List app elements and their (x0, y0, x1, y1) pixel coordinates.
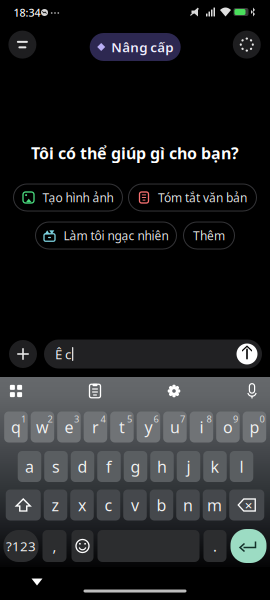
staticText: i (199, 416, 203, 438)
staticText: 18:34 (13, 5, 40, 20)
button[interactable]: w (31, 411, 54, 442)
button[interactable]: p (243, 411, 266, 442)
button[interactable]: h (150, 451, 174, 482)
staticText: o (223, 416, 233, 438)
button[interactable]: Ê c (44, 339, 262, 368)
staticText: w (36, 416, 49, 438)
button[interactable]: Shift (6, 489, 41, 520)
staticText: Làm tôi ngạc nhiên (63, 227, 168, 243)
staticText: s (52, 456, 60, 477)
button[interactable]: New chat (233, 31, 261, 59)
button[interactable]: v (123, 489, 147, 520)
button[interactable]: Hide keyboard (21, 570, 53, 594)
staticText: Tôi có thể giúp gì cho bạn? (31, 142, 239, 164)
staticText: u (170, 416, 180, 438)
button[interactable]: Delete (229, 489, 264, 520)
staticText: Thêm (193, 227, 225, 243)
button[interactable]: Voice input (239, 378, 265, 404)
staticText: 6 (153, 413, 158, 425)
button[interactable]: Add attachment (9, 340, 37, 368)
staticText: e (64, 416, 73, 438)
button[interactable]: g (124, 451, 147, 482)
staticText: f (106, 456, 112, 477)
staticText: m (207, 494, 222, 516)
staticText: Nâng cấp (111, 38, 173, 56)
staticText: a (25, 456, 34, 477)
button[interactable]: n (176, 489, 200, 520)
button[interactable]: Tạo hình ảnh (13, 184, 122, 211)
button[interactable]: Apps (3, 378, 29, 404)
staticText: y (144, 416, 152, 438)
staticText: x (78, 494, 86, 516)
staticText: 0 (259, 413, 264, 425)
button[interactable]: o (216, 411, 240, 442)
staticText: j (186, 456, 190, 477)
staticText: l (239, 456, 243, 477)
staticText: c (104, 494, 112, 516)
staticText: 8 (206, 413, 211, 425)
staticText: g (130, 456, 140, 477)
staticText: , (52, 536, 56, 556)
staticText: d (77, 456, 87, 477)
button[interactable]: Settings (161, 378, 187, 404)
button[interactable]: Thêm (183, 222, 234, 249)
staticText: r (92, 416, 99, 438)
button[interactable]: s (44, 451, 68, 482)
staticText: h (157, 456, 167, 477)
button[interactable]: q (4, 411, 28, 442)
button[interactable]: Enter (230, 529, 266, 563)
staticText: n (183, 494, 193, 516)
button[interactable]: Làm tôi ngạc nhiên (35, 222, 176, 249)
button[interactable]: r (84, 411, 107, 442)
staticText: 5 (127, 413, 132, 425)
button[interactable]: j (177, 451, 200, 482)
button[interactable]: l (230, 451, 253, 482)
button[interactable]: e (57, 411, 81, 442)
staticText: v (131, 494, 139, 516)
staticText: p (249, 416, 259, 438)
button[interactable]: Tóm tắt văn bản (128, 184, 256, 211)
button[interactable]: u (163, 411, 187, 442)
staticText: k (210, 456, 219, 477)
staticText: . (213, 536, 217, 556)
staticText: b (156, 494, 166, 516)
staticText: ?123 (6, 537, 36, 555)
button[interactable]: z (44, 489, 67, 520)
staticText: Tóm tắt văn bản (158, 189, 247, 205)
staticText: z (51, 494, 59, 516)
staticText: 4 (100, 413, 105, 425)
staticText: Tạo hình ảnh (42, 189, 113, 205)
button[interactable]: ?123 (3, 530, 38, 562)
button[interactable]: Nâng cấp (90, 33, 181, 61)
button[interactable]: i (190, 411, 213, 442)
staticText: × (245, 496, 253, 514)
staticText: 3 (74, 413, 79, 425)
button[interactable]: Send (236, 343, 257, 364)
staticText: 1 (21, 413, 26, 425)
button[interactable]: Emoji (71, 530, 93, 562)
button[interactable]: . (203, 530, 226, 562)
button[interactable]: a (18, 451, 41, 482)
button[interactable]: b (150, 489, 173, 520)
button[interactable]: f (97, 451, 121, 482)
button[interactable]: c (97, 489, 120, 520)
button[interactable]: d (71, 451, 94, 482)
button[interactable]: Menu (8, 31, 36, 59)
staticText: 2 (47, 413, 52, 425)
staticText: q (11, 416, 21, 438)
button[interactable]: t (110, 411, 134, 442)
button[interactable]: Clipboard (82, 378, 108, 404)
staticText: 7 (180, 413, 185, 425)
staticText: Ê c (55, 345, 71, 363)
button[interactable]: m (203, 489, 226, 520)
button[interactable]: x (70, 489, 94, 520)
button[interactable]: k (203, 451, 227, 482)
button[interactable]: , (42, 530, 66, 562)
button[interactable]: y (137, 411, 160, 442)
staticText: 9 (233, 413, 238, 425)
staticText: t (119, 416, 125, 438)
